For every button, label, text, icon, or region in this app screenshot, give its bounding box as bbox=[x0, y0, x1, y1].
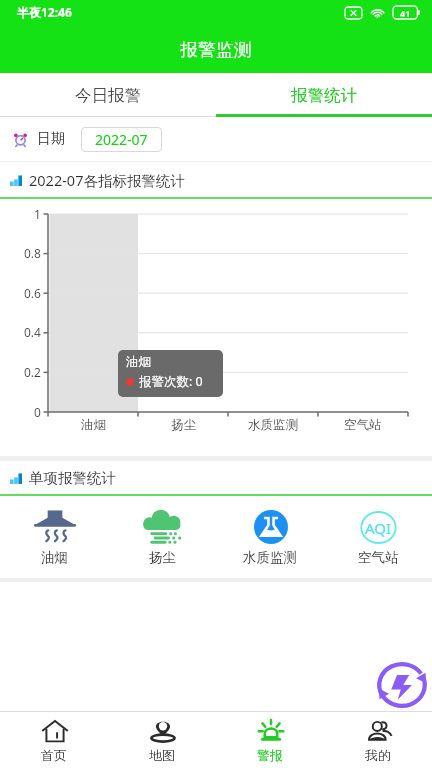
staticText: 0.8 bbox=[24, 245, 41, 261]
button[interactable]: 报警统计 bbox=[216, 73, 432, 117]
button[interactable]: 警报 bbox=[216, 712, 324, 768]
staticText: 0 bbox=[34, 404, 41, 420]
staticText: 0.6 bbox=[24, 285, 41, 301]
button[interactable]: 今日报警 bbox=[0, 73, 216, 117]
button[interactable]: 扬尘 bbox=[108, 496, 216, 578]
staticText: 41 bbox=[400, 7, 411, 19]
staticText: 报警监测 bbox=[180, 39, 252, 62]
staticText: 0.2 bbox=[24, 364, 41, 380]
staticText: 2022-07 bbox=[95, 130, 148, 149]
staticText: 单项报警统计 bbox=[29, 469, 116, 487]
staticText: 警报 bbox=[257, 747, 283, 763]
button[interactable]: Refresh bbox=[377, 662, 427, 708]
button[interactable]: 油烟 bbox=[0, 496, 108, 578]
staticText: 今日报警 bbox=[75, 85, 141, 106]
staticText: 报警统计 bbox=[291, 85, 357, 106]
button[interactable]: 我的 bbox=[324, 712, 432, 768]
staticText: 扬尘 bbox=[171, 417, 196, 433]
button[interactable]: 地图 bbox=[108, 712, 216, 768]
staticText: 1 bbox=[34, 206, 41, 222]
staticText: 空气站 bbox=[344, 417, 382, 433]
staticText: 半夜12:46 bbox=[17, 4, 72, 20]
staticText: 水质监测 bbox=[248, 417, 298, 433]
button[interactable]: 2022-07 bbox=[81, 127, 162, 152]
staticText: 报警次数: 0 bbox=[139, 373, 203, 390]
staticText: 油烟 bbox=[41, 549, 68, 566]
staticText: 油烟 bbox=[81, 417, 106, 433]
staticText: 2022-07各指标报警统计 bbox=[29, 170, 185, 190]
staticText: 空气站 bbox=[358, 549, 399, 566]
staticText: 日期 bbox=[37, 130, 65, 148]
button[interactable]: 首页 bbox=[0, 712, 108, 768]
staticText: 0.4 bbox=[24, 324, 41, 340]
staticText: 扬尘 bbox=[149, 549, 176, 566]
staticText: 油烟 bbox=[126, 354, 151, 370]
button[interactable]: 水质监测 bbox=[216, 496, 324, 578]
staticText: 我的 bbox=[365, 747, 391, 763]
staticText: AQI bbox=[365, 518, 392, 538]
staticText: 地图 bbox=[149, 747, 175, 763]
staticText: 水质监测 bbox=[243, 549, 297, 566]
button[interactable]: AQI bbox=[324, 496, 432, 578]
staticText: 首页 bbox=[41, 747, 67, 763]
